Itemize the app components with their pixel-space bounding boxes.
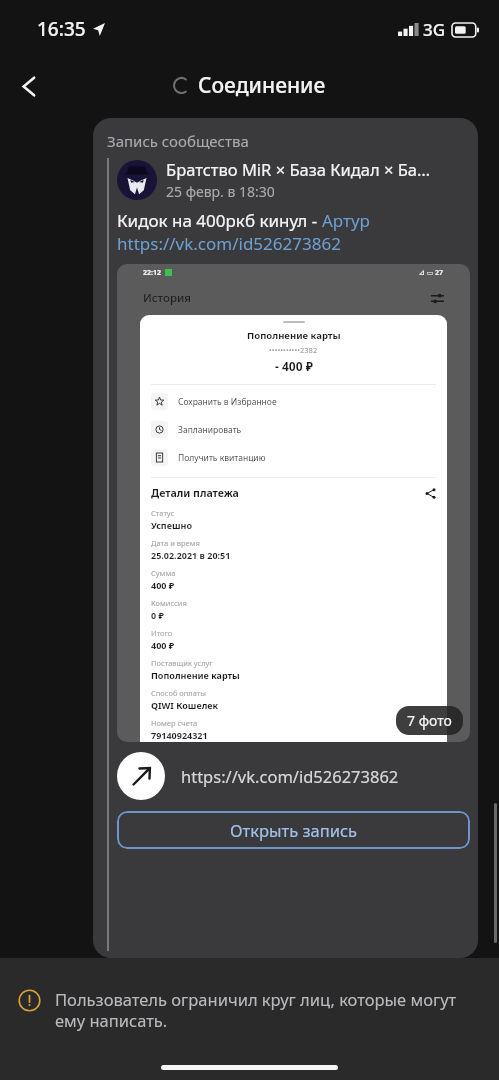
staticText: Братство MiR × База Кидал × Ба… [166,158,431,180]
button[interactable]: https://vk.com/id526273862 [117,232,341,255]
staticText: 25 февр. в 18:30 [166,182,275,201]
staticText: Успешно [151,519,193,531]
staticText: Дата и время [151,538,200,548]
staticText: 22:12 [143,268,161,278]
staticText: Запись сообщества [107,131,249,151]
button[interactable]: Запись сообщества [93,118,478,958]
button[interactable]: Запланировать [151,421,436,438]
staticText: ⊿ ▭ 27 [419,268,444,278]
staticText: 25.02.2021 в 20:51 [151,549,231,561]
staticText: Запланировать [178,424,242,436]
staticText: Пополнение карты [151,669,240,681]
staticText: Открыть запись [230,819,358,841]
staticText: 16:35 [37,16,86,42]
staticText: 400 ₽ [151,639,175,651]
button[interactable]: Сохранить в Избранное [151,393,436,410]
button[interactable]: Артур [322,209,370,232]
staticText: Способ оплаты [151,688,206,698]
staticText: Сумма [151,568,176,578]
button[interactable]: Back [6,63,52,109]
staticText: Кидок на 400ркб кинул - [117,209,322,232]
staticText: Статус [151,508,175,518]
staticText: QIWI Кошелек [151,699,219,711]
staticText: Пользователь ограничил круг лиц, которые… [55,988,477,1032]
button[interactable]: 7 фото [396,706,463,735]
staticText: Детали платежа [151,486,239,500]
button[interactable]: https://vk.com/id526273862 [117,752,470,800]
staticText: 400 ₽ [151,579,175,591]
staticText: 79140924321 [151,729,208,741]
staticText: Комиссия [151,598,187,608]
button[interactable]: Открыть запись [117,811,470,849]
staticText: Сохранить в Избранное [178,396,277,408]
staticText: - 400 ₽ [275,358,313,374]
button[interactable]: Share [425,488,436,499]
button[interactable]: 22:12 [117,264,470,742]
staticText: 7 фото [407,711,452,730]
staticText: 0 ₽ [151,609,164,621]
staticText: Поставщик услуг [151,658,213,668]
staticText: •••••••••••2382 [269,345,318,355]
staticText: 3G [423,18,446,41]
staticText: Итого [151,628,173,638]
staticText: Соединение [198,71,326,100]
staticText: Пополнение карты [247,329,341,342]
staticText: История [143,290,192,306]
staticText: Получить квитанцию [178,452,266,464]
button[interactable]: Получить квитанцию [151,449,436,466]
staticText: Номер счета [151,718,198,728]
staticText: https://vk.com/id526273862 [181,765,399,787]
